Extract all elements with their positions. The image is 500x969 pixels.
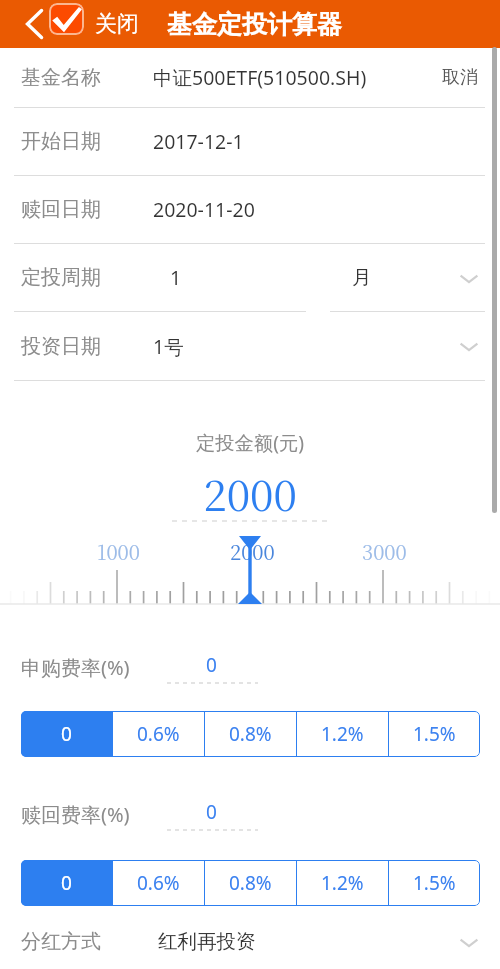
button[interactable]: 分红方式 (0, 906, 500, 969)
staticText: 0 (61, 870, 72, 896)
staticText: 3000 (362, 537, 407, 566)
staticText: 取消 (442, 66, 478, 89)
staticText: 1.5% (413, 721, 456, 747)
staticText: 0 (206, 652, 217, 678)
staticText: 0.6% (137, 721, 180, 747)
button[interactable]: 1.5% (389, 860, 480, 906)
staticText: 定投金额(元) (0, 429, 500, 455)
button[interactable] (459, 268, 479, 288)
staticText: 关闭 (95, 10, 139, 38)
staticText: 0 (61, 721, 72, 747)
staticText: 0.8% (229, 721, 272, 747)
staticText: 1000 (97, 537, 140, 566)
staticText: 1.2% (321, 870, 364, 896)
button[interactable]: 1.5% (389, 711, 480, 757)
button[interactable]: 投资日期 (0, 312, 500, 380)
staticText: 1号 (153, 333, 184, 360)
staticText: 2017-12-1 (153, 128, 244, 155)
button[interactable]: 1.2% (297, 860, 388, 906)
staticText: 红利再投资 (158, 929, 256, 954)
staticText: 2020-11-20 (153, 196, 255, 223)
button[interactable]: Back (16, 2, 52, 46)
staticText: 0.6% (137, 870, 180, 896)
button[interactable]: 基金名称 (0, 48, 500, 107)
staticText: 2000 (0, 463, 500, 523)
staticText: 申购费率(%) (21, 654, 130, 681)
staticText: 赎回日期 (21, 197, 101, 222)
staticText: 1.2% (321, 721, 364, 747)
staticText: 赎回费率(%) (21, 801, 130, 828)
button[interactable]: 0 (21, 711, 112, 757)
button[interactable]: 0.8% (205, 860, 296, 906)
staticText: 基金名称 (21, 65, 101, 90)
staticText: 中证500ETF(510500.SH) (153, 64, 367, 91)
staticText: 2000 (230, 537, 275, 566)
button[interactable]: 定投周期 (21, 265, 101, 290)
button[interactable]: 0.6% (113, 711, 204, 757)
staticText: 1 (170, 264, 182, 291)
staticText: 分红方式 (21, 929, 101, 954)
staticText: 月 (352, 265, 372, 290)
button[interactable]: 0.6% (113, 860, 204, 906)
button[interactable]: 关闭 (92, 5, 142, 43)
staticText: 0 (206, 799, 217, 825)
button[interactable]: 赎回日期 (0, 176, 500, 243)
staticText: 1.5% (413, 870, 456, 896)
button[interactable]: 0.8% (205, 711, 296, 757)
staticText: 基金定投计算器 (167, 9, 342, 40)
staticText: 开始日期 (21, 129, 101, 154)
button[interactable]: 1.2% (297, 711, 388, 757)
staticText: 0.8% (229, 870, 272, 896)
button[interactable]: 开始日期 (0, 108, 500, 175)
button[interactable]: Confirm (49, 3, 84, 35)
button[interactable]: 0 (21, 860, 112, 906)
staticText: 投资日期 (21, 334, 101, 359)
